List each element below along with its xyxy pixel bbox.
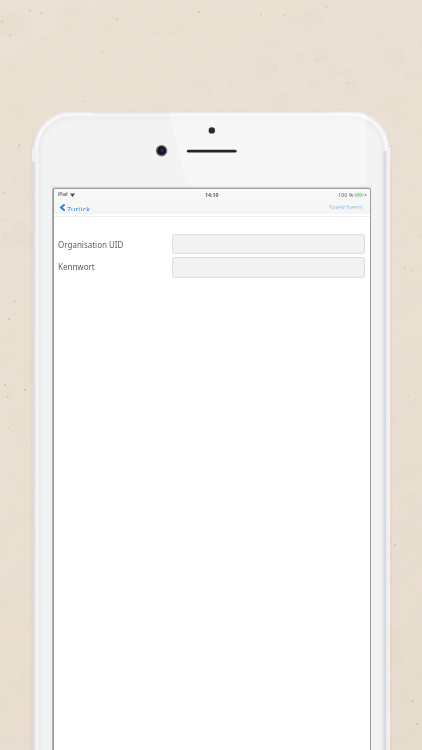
- staticText: iPad: [58, 191, 68, 197]
- button[interactable]: Speichern: [321, 199, 370, 212]
- button[interactable]: Organisation UID Eingabefeld: [172, 234, 365, 254]
- staticText: Zurück: [67, 204, 90, 211]
- staticText: Kennwort: [58, 261, 95, 272]
- staticText: 14:19: [205, 191, 219, 198]
- staticText: 100 %: [338, 191, 354, 198]
- staticText: Speichern: [329, 202, 363, 209]
- button[interactable]: Zurück: [57, 201, 98, 214]
- button[interactable]: Kennwort Eingabefeld: [172, 257, 365, 278]
- staticText: Organisation UID: [58, 239, 124, 250]
